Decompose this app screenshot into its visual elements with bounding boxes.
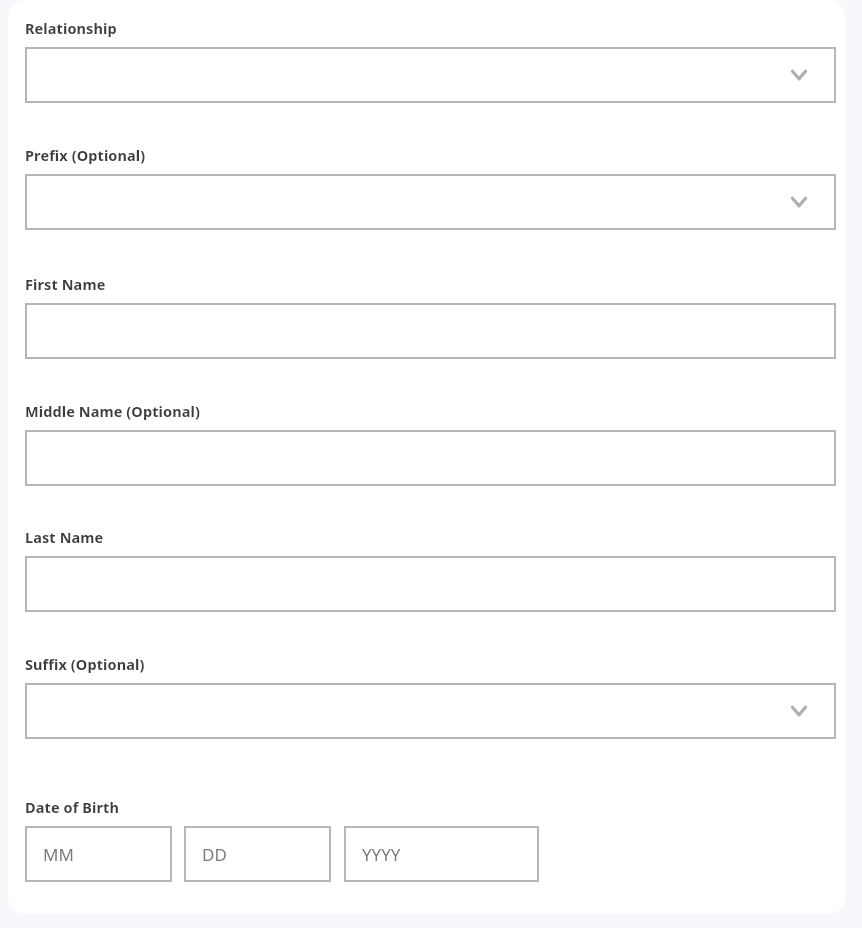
button[interactable] — [25, 430, 836, 486]
staticText: Last Name — [25, 527, 104, 547]
button[interactable]: MM — [25, 826, 172, 882]
staticText: Prefix (Optional) — [25, 145, 146, 165]
button[interactable]: YYYY — [344, 826, 539, 882]
button[interactable]: Relationship — [25, 47, 836, 103]
staticText: DD — [202, 843, 227, 866]
button[interactable] — [25, 303, 836, 359]
staticText: Suffix (Optional) — [25, 654, 145, 674]
staticText: YYYY — [362, 843, 401, 866]
staticText: First Name — [25, 274, 106, 294]
button[interactable]: Suffix — [25, 683, 836, 739]
staticText: Relationship — [25, 18, 117, 38]
staticText: Date of Birth — [25, 797, 119, 817]
button[interactable]: DD — [184, 826, 331, 882]
button[interactable] — [25, 556, 836, 612]
button[interactable]: Prefix — [25, 174, 836, 230]
staticText: MM — [43, 843, 74, 866]
staticText: Middle Name (Optional) — [25, 401, 200, 421]
